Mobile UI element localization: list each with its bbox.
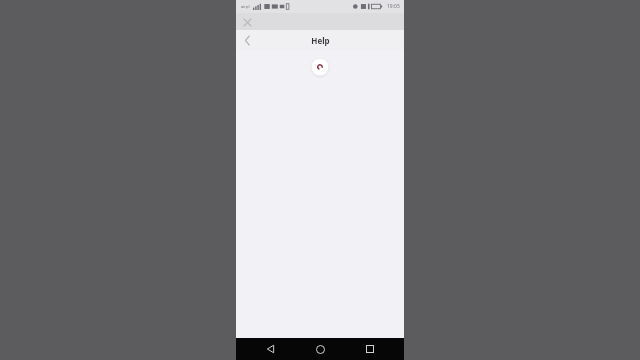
staticText: 19:05 [387, 3, 400, 10]
staticText: airpl [241, 4, 250, 9]
button[interactable]: Recent apps [358, 338, 382, 360]
button[interactable]: Home [308, 338, 332, 360]
staticText: Help [311, 35, 330, 46]
button[interactable]: Back [239, 30, 255, 50]
button[interactable]: Back [258, 338, 282, 360]
button[interactable]: Close [239, 14, 255, 30]
